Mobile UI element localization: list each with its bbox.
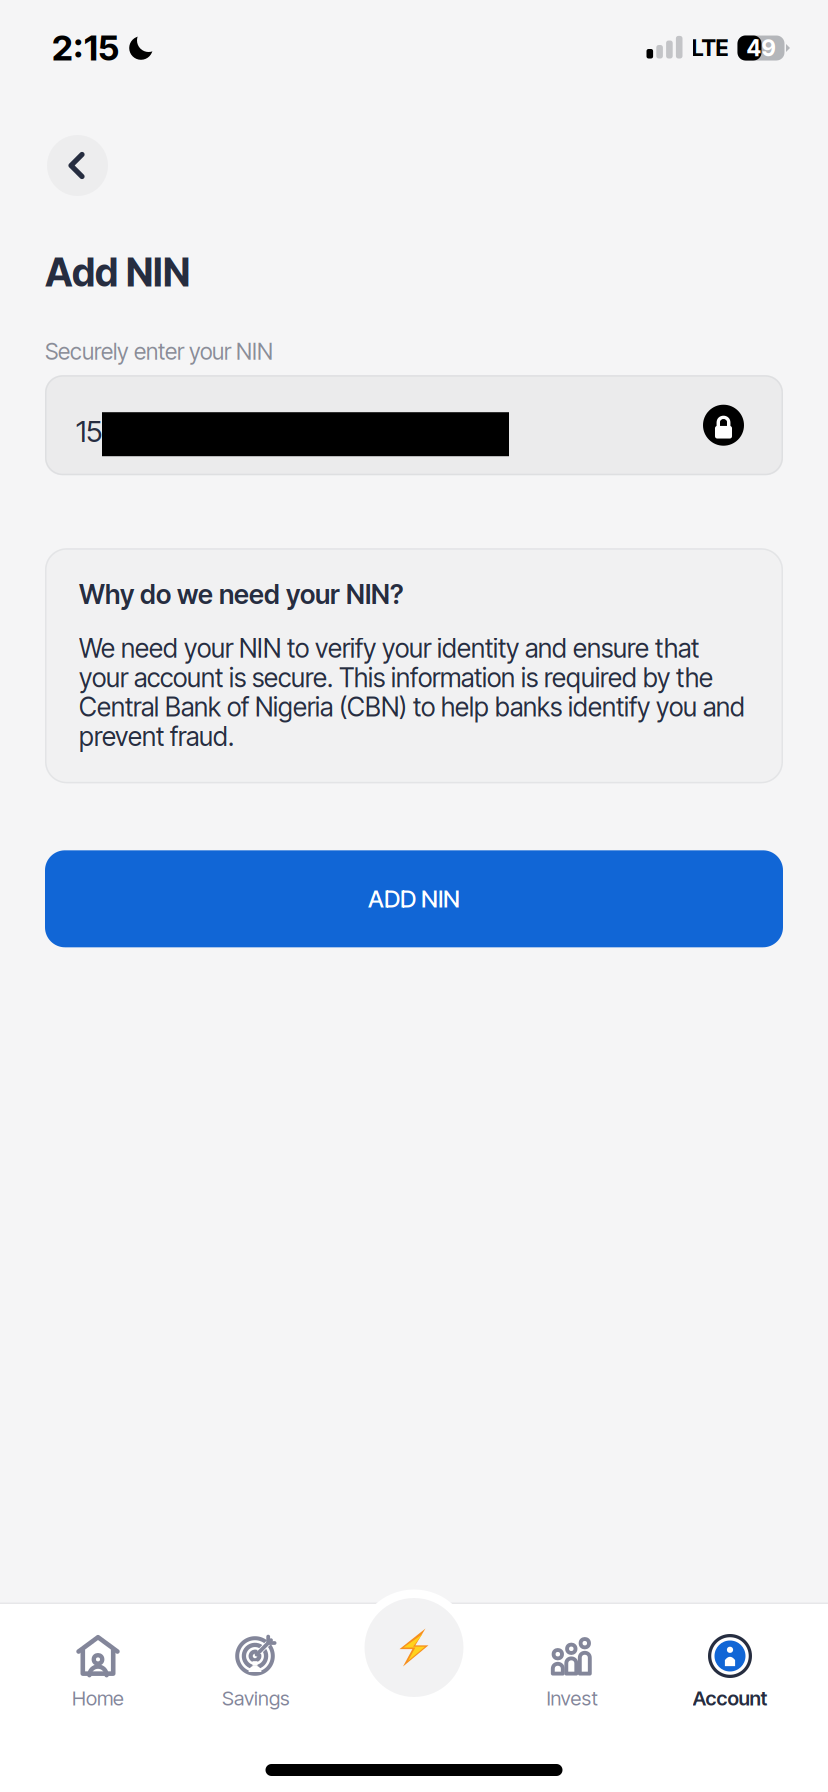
button[interactable]: Home	[19, 1604, 177, 1728]
button[interactable]: Invest	[493, 1604, 651, 1728]
staticText: Add NIN	[45, 249, 190, 296]
staticText: LTE	[691, 34, 728, 62]
staticText: Savings	[222, 1686, 290, 1710]
button[interactable]: ADD NIN	[45, 850, 783, 947]
staticText: 49	[746, 34, 775, 62]
staticText: We need your NIN to verify your identity…	[79, 632, 745, 752]
button[interactable]: Savings	[177, 1604, 335, 1728]
staticText: ADD NIN	[368, 884, 460, 913]
staticText: Securely enter your NIN	[45, 338, 273, 365]
staticText: Home	[72, 1686, 124, 1710]
button[interactable]: Account	[651, 1604, 809, 1728]
staticText: Account	[692, 1686, 767, 1710]
staticText: 2:15	[52, 27, 119, 69]
button[interactable]: Quick actions	[356, 1589, 472, 1705]
staticText: Invest	[546, 1686, 597, 1710]
staticText: Why do we need your NIN?	[79, 578, 404, 610]
staticText: 15	[76, 413, 102, 449]
button[interactable]: Back	[47, 135, 108, 196]
